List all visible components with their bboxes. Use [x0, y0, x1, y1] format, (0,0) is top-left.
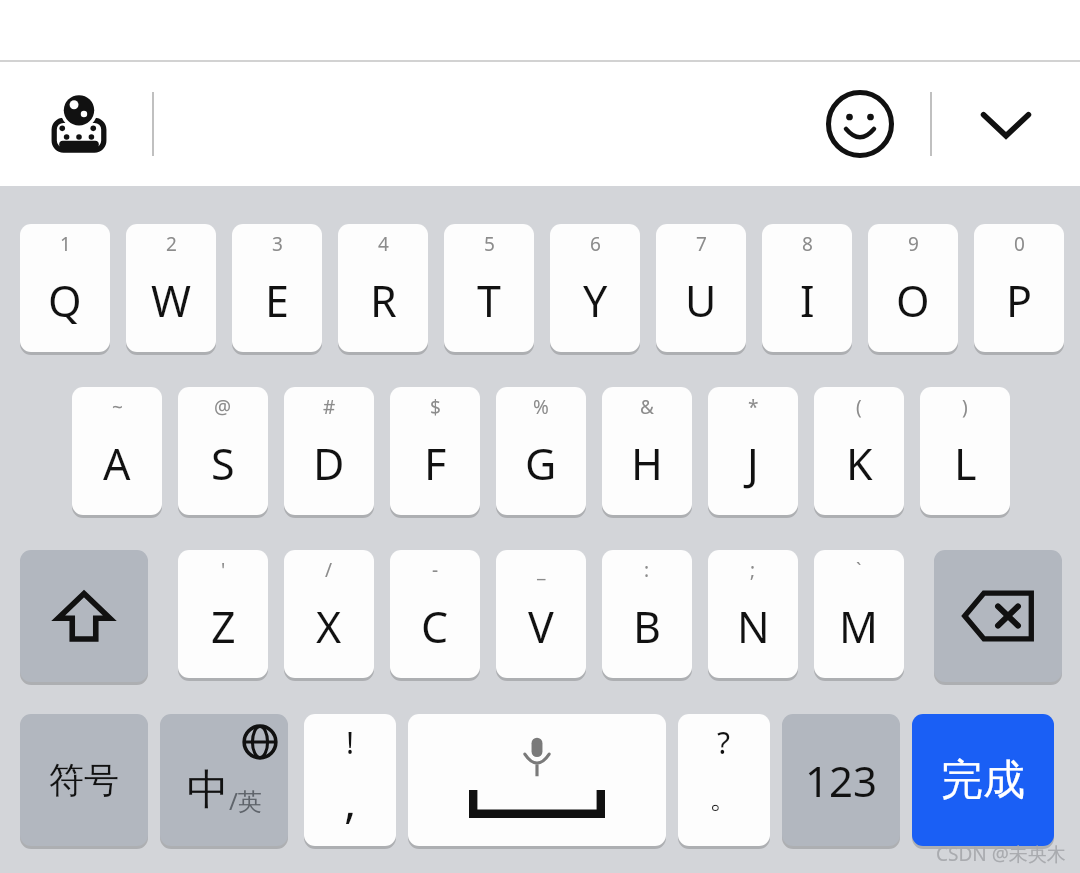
staticText: A: [103, 434, 131, 493]
button[interactable]: N: [708, 550, 798, 678]
staticText: D: [313, 434, 345, 493]
button[interactable]: 。: [678, 714, 770, 846]
button[interactable]: Backspace: [934, 550, 1062, 682]
staticText: ,: [344, 769, 357, 832]
staticText: ): [962, 394, 968, 420]
button[interactable]: Switch input language: [42, 87, 116, 161]
button[interactable]: O: [868, 224, 958, 352]
staticText: /: [325, 557, 333, 583]
staticText: 8: [802, 231, 813, 257]
staticText: V: [528, 597, 554, 656]
button[interactable]: Y: [550, 224, 640, 352]
staticText: H: [631, 434, 663, 493]
staticText: I: [800, 271, 815, 330]
staticText: ?: [717, 722, 731, 763]
button[interactable]: V: [496, 550, 586, 678]
staticText: 中: [187, 764, 229, 817]
staticText: O: [896, 271, 930, 330]
staticText: Y: [583, 271, 608, 330]
staticText: Q: [48, 271, 82, 330]
button[interactable]: Space: [408, 714, 666, 846]
button[interactable]: Shift: [20, 550, 148, 682]
staticText: M: [839, 597, 879, 656]
staticText: (: [856, 394, 862, 420]
button[interactable]: H: [602, 387, 692, 515]
button[interactable]: 完成: [912, 714, 1054, 846]
button[interactable]: S: [178, 387, 268, 515]
staticText: $: [430, 394, 441, 420]
staticText: 6: [590, 231, 601, 257]
staticText: E: [265, 271, 289, 330]
button[interactable]: L: [920, 387, 1010, 515]
staticText: @: [214, 394, 232, 420]
staticText: 9: [908, 231, 919, 257]
staticText: :: [644, 557, 650, 583]
button[interactable]: A: [72, 387, 162, 515]
button[interactable]: Z: [178, 550, 268, 678]
staticText: L: [954, 434, 977, 493]
staticText: !: [346, 722, 355, 763]
staticText: %: [533, 394, 549, 420]
staticText: U: [685, 271, 717, 330]
button[interactable]: 123: [782, 714, 900, 846]
staticText: K: [846, 434, 873, 493]
staticText: 4: [378, 231, 389, 257]
staticText: J: [747, 434, 759, 493]
staticText: W: [151, 271, 191, 330]
staticText: /英: [229, 784, 262, 817]
staticText: _: [537, 557, 546, 583]
staticText: CSDN @未央木: [936, 841, 1066, 867]
button[interactable]: ，: [304, 714, 396, 846]
button[interactable]: G: [496, 387, 586, 515]
staticText: F: [424, 434, 447, 493]
staticText: P: [1006, 271, 1033, 330]
staticText: B: [633, 597, 661, 656]
button[interactable]: T: [444, 224, 534, 352]
button[interactable]: Hide keyboard: [964, 82, 1048, 166]
staticText: 2: [166, 231, 177, 257]
staticText: 3: [272, 231, 283, 257]
staticText: 5: [484, 231, 495, 257]
staticText: N: [737, 597, 770, 656]
button[interactable]: W: [126, 224, 216, 352]
staticText: Z: [211, 597, 236, 656]
staticText: 7: [696, 231, 707, 257]
staticText: X: [316, 597, 342, 656]
staticText: ~: [112, 394, 123, 420]
button[interactable]: D: [284, 387, 374, 515]
staticText: 0: [1014, 231, 1025, 257]
staticText: #: [323, 394, 336, 420]
button[interactable]: I: [762, 224, 852, 352]
button[interactable]: Q: [20, 224, 110, 352]
button[interactable]: U: [656, 224, 746, 352]
staticText: C: [421, 597, 449, 656]
button[interactable]: R: [338, 224, 428, 352]
staticText: ;: [750, 557, 756, 583]
staticText: S: [211, 434, 235, 493]
staticText: T: [477, 271, 501, 330]
button[interactable]: J: [708, 387, 798, 515]
button[interactable]: 符号: [20, 714, 148, 846]
staticText: R: [370, 271, 397, 330]
staticText: 完成: [941, 754, 1025, 807]
staticText: ': [221, 557, 226, 583]
button[interactable]: 中英切换: [160, 714, 288, 846]
button[interactable]: P: [974, 224, 1064, 352]
button[interactable]: Emoji: [820, 84, 900, 164]
button[interactable]: M: [814, 550, 904, 678]
staticText: 123: [805, 752, 878, 809]
button[interactable]: K: [814, 387, 904, 515]
staticText: 。: [709, 779, 739, 817]
button[interactable]: C: [390, 550, 480, 678]
staticText: 1: [60, 231, 71, 257]
button[interactable]: X: [284, 550, 374, 678]
staticText: G: [525, 434, 557, 493]
button[interactable]: E: [232, 224, 322, 352]
button[interactable]: F: [390, 387, 480, 515]
staticText: `: [856, 557, 862, 583]
staticText: 符号: [49, 758, 119, 802]
staticText: -: [432, 557, 439, 583]
staticText: *: [748, 394, 759, 420]
button[interactable]: B: [602, 550, 692, 678]
staticText: &: [640, 394, 654, 420]
